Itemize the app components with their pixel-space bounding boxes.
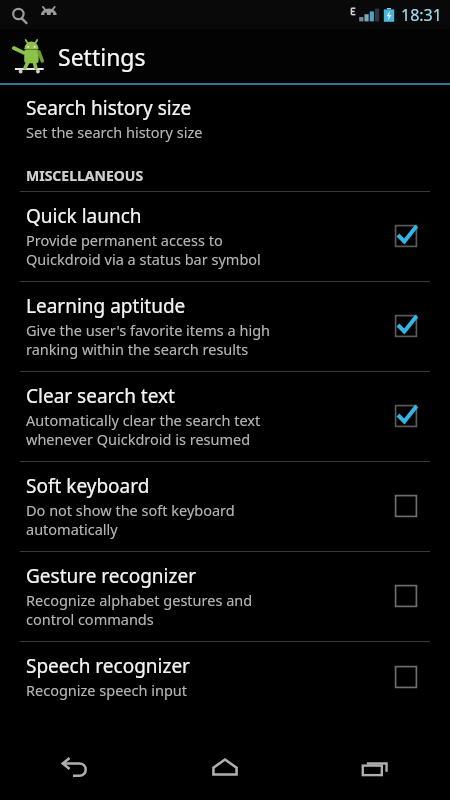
button[interactable]: Quick launch [384, 214, 428, 258]
staticText: 18:31 [401, 4, 442, 26]
button[interactable]: App icon, navigate up [8, 34, 52, 78]
button[interactable]: Clear search text [0, 372, 450, 461]
button[interactable]: Quick launch [0, 192, 450, 281]
staticText: Search history size [26, 95, 192, 121]
button[interactable]: Speech recognizer [0, 642, 450, 712]
staticText: Soft keyboard [26, 473, 150, 499]
staticText: Gesture recognizer [26, 563, 196, 589]
button[interactable]: Soft keyboard [0, 462, 450, 551]
staticText: Clear search text [26, 383, 175, 409]
staticText: Recognize alphabet gestures and control … [26, 590, 253, 629]
staticText: Learning aptitude [26, 293, 186, 319]
staticText: Give the user's favorite items a high ra… [26, 320, 271, 359]
button[interactable]: Gesture recognizer [0, 552, 450, 641]
button[interactable]: Search history size [0, 85, 450, 154]
staticText: Quick launch [26, 203, 142, 229]
staticText: MISCELLANEOUS [26, 166, 144, 185]
button[interactable]: Home [150, 738, 300, 800]
staticText: Recognize speech input [26, 680, 188, 700]
button[interactable]: Back [0, 738, 150, 800]
button[interactable]: Soft keyboard [384, 484, 428, 528]
staticText: Do not show the soft keyboard automatica… [26, 500, 235, 539]
staticText: Automatically clear the search text when… [26, 410, 261, 449]
staticText: Set the search history size [26, 122, 203, 142]
staticText: Speech recognizer [26, 653, 190, 679]
staticText: Settings [58, 41, 146, 72]
button[interactable]: Recent apps [300, 738, 450, 800]
button[interactable]: Gesture recognizer [384, 574, 428, 618]
button[interactable]: Speech recognizer [384, 655, 428, 699]
button[interactable]: Learning aptitude [384, 304, 428, 348]
button[interactable]: Learning aptitude [0, 282, 450, 371]
staticText: Provide permanent access to Quickdroid v… [26, 230, 261, 269]
button[interactable]: Clear search text [384, 394, 428, 438]
